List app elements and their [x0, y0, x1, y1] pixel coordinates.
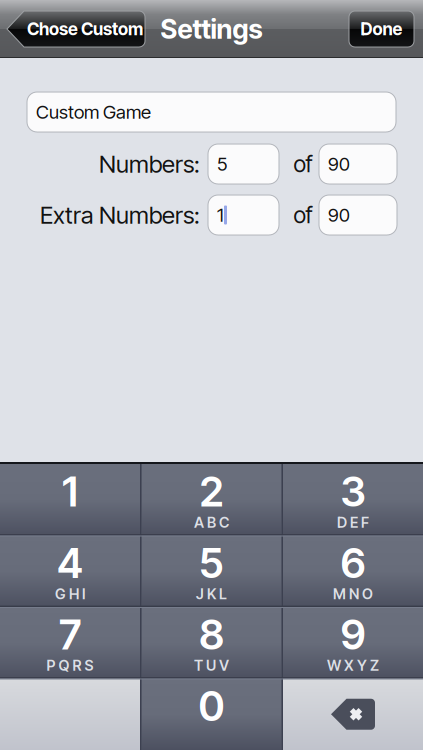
- staticText: 90: [328, 204, 350, 226]
- staticText: M N O: [333, 585, 373, 603]
- staticText: 6: [340, 538, 365, 588]
- staticText: G H I: [55, 585, 85, 603]
- button[interactable]: 0: [141, 678, 281, 750]
- button[interactable]: 1: [0, 464, 140, 535]
- button[interactable]: Delete: [283, 678, 423, 750]
- button[interactable]: 2: [141, 464, 281, 535]
- staticText: 7: [59, 609, 81, 659]
- staticText: 0: [198, 681, 224, 731]
- button[interactable]: 8: [141, 607, 281, 678]
- button[interactable]: 5: [141, 535, 281, 607]
- button[interactable]: Chose Custom: [7, 11, 145, 47]
- button[interactable]: 3: [283, 464, 423, 535]
- staticText: Custom Game: [36, 101, 151, 123]
- staticText: of: [293, 201, 312, 229]
- button[interactable]: 6: [283, 535, 423, 607]
- staticText: Numbers:: [99, 149, 200, 178]
- staticText: 4: [57, 538, 83, 588]
- staticText: Settings: [160, 13, 262, 45]
- staticText: 5: [199, 538, 224, 588]
- staticText: W X Y Z: [327, 657, 379, 674]
- staticText: 1: [217, 204, 224, 226]
- button[interactable]: 7: [0, 607, 140, 678]
- staticText: 5: [217, 153, 227, 175]
- button[interactable]: Done: [349, 11, 414, 47]
- staticText: T U V: [194, 657, 229, 674]
- staticText: A B C: [194, 514, 229, 531]
- staticText: of: [293, 150, 312, 178]
- staticText: 90: [328, 153, 350, 175]
- button[interactable]: 9: [283, 607, 423, 678]
- button[interactable]: 4: [0, 535, 140, 607]
- staticText: 9: [340, 609, 365, 659]
- staticText: 1: [62, 466, 78, 516]
- staticText: 3: [340, 466, 365, 516]
- staticText: 8: [199, 609, 224, 659]
- staticText: 2: [199, 466, 223, 516]
- staticText: Chose Custom: [27, 18, 143, 39]
- staticText: P Q R S: [46, 657, 93, 674]
- button[interactable]: Blank: [0, 678, 140, 750]
- staticText: Done: [360, 18, 402, 39]
- staticText: Extra Numbers:: [40, 200, 200, 229]
- staticText: J K L: [196, 585, 227, 603]
- staticText: D E F: [337, 514, 369, 531]
